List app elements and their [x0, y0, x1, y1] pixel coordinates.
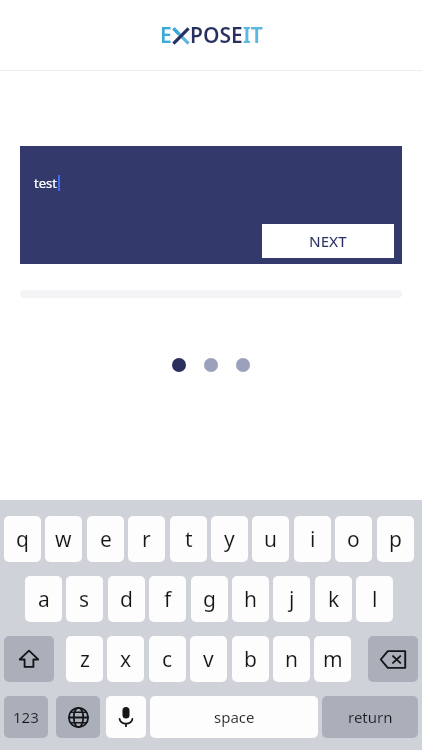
- staticText: IT: [243, 21, 263, 50]
- staticText: i: [310, 525, 316, 554]
- staticText: NEXT: [309, 231, 347, 251]
- button[interactable]: g: [191, 576, 228, 622]
- button[interactable]: y: [211, 516, 248, 562]
- staticText: POSE: [190, 21, 243, 50]
- button[interactable]: w: [45, 516, 82, 562]
- button[interactable]: c: [149, 636, 186, 682]
- staticText: e: [100, 525, 112, 554]
- button[interactable]: x: [107, 636, 144, 682]
- button[interactable]: d: [108, 576, 145, 622]
- staticText: v: [203, 645, 214, 674]
- button[interactable]: n: [273, 636, 310, 682]
- staticText: j: [289, 585, 295, 614]
- button[interactable]: Voice input: [106, 696, 146, 738]
- button[interactable]: l: [356, 576, 393, 622]
- button[interactable]: a: [25, 576, 62, 622]
- staticText: 123: [13, 707, 39, 727]
- button[interactable]: b: [232, 636, 269, 682]
- button[interactable]: u: [252, 516, 289, 562]
- button[interactable]: e: [87, 516, 124, 562]
- staticText: E: [160, 21, 172, 50]
- button[interactable]: r: [128, 516, 165, 562]
- button[interactable]: [172, 358, 186, 372]
- button[interactable]: q: [4, 516, 41, 562]
- button[interactable]: 123: [4, 696, 48, 738]
- staticText: y: [224, 525, 235, 554]
- staticText: c: [162, 645, 173, 674]
- staticText: a: [38, 585, 50, 614]
- button[interactable]: space: [150, 696, 318, 738]
- button[interactable]: Backspace: [368, 636, 418, 682]
- staticText: s: [79, 585, 90, 614]
- button[interactable]: p: [377, 516, 414, 562]
- staticText: test: [34, 174, 57, 192]
- staticText: space: [214, 707, 255, 727]
- staticText: x: [120, 645, 132, 674]
- button[interactable]: NEXT: [262, 224, 394, 258]
- staticText: o: [347, 525, 360, 554]
- button[interactable]: o: [335, 516, 372, 562]
- staticText: k: [328, 585, 340, 614]
- staticText: n: [285, 645, 298, 674]
- staticText: u: [264, 525, 277, 554]
- button[interactable]: [236, 358, 250, 372]
- staticText: g: [203, 585, 216, 614]
- button[interactable]: m: [314, 636, 351, 682]
- staticText: t: [185, 525, 193, 554]
- button[interactable]: s: [66, 576, 103, 622]
- button[interactable]: return: [322, 696, 418, 738]
- staticText: b: [244, 645, 257, 674]
- button[interactable]: [204, 358, 218, 372]
- button[interactable]: h: [232, 576, 269, 622]
- staticText: return: [348, 707, 393, 727]
- staticText: w: [55, 525, 72, 554]
- button[interactable]: Change keyboard language: [56, 696, 100, 738]
- button[interactable]: f: [149, 576, 186, 622]
- button[interactable]: t: [170, 516, 207, 562]
- staticText: z: [80, 645, 90, 674]
- staticText: d: [120, 585, 133, 614]
- staticText: r: [142, 525, 151, 554]
- button[interactable]: z: [66, 636, 103, 682]
- staticText: h: [244, 585, 257, 614]
- staticText: m: [323, 645, 343, 674]
- button[interactable]: i: [294, 516, 331, 562]
- staticText: q: [16, 525, 29, 554]
- button[interactable]: j: [273, 576, 310, 622]
- staticText: l: [372, 585, 378, 614]
- staticText: f: [164, 585, 172, 614]
- button[interactable]: Shift: [4, 636, 54, 682]
- button[interactable]: v: [190, 636, 227, 682]
- button[interactable]: test: [20, 146, 402, 264]
- button[interactable]: k: [315, 576, 352, 622]
- staticText: p: [389, 525, 402, 554]
